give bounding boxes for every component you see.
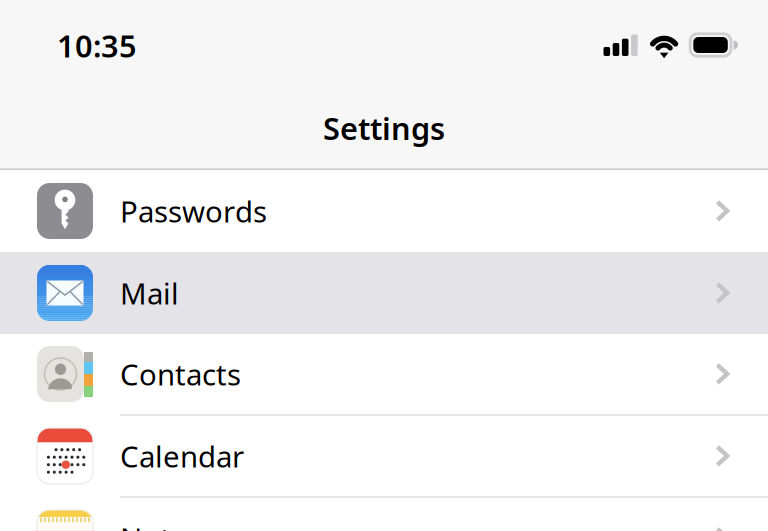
staticText: Settings <box>323 108 445 148</box>
staticText: Contacts <box>120 354 241 393</box>
button[interactable]: Notes <box>0 498 768 531</box>
button[interactable]: Passwords <box>0 170 768 252</box>
staticText: 10:35 <box>57 25 137 66</box>
button[interactable]: Contacts <box>0 334 768 416</box>
button[interactable]: Mail <box>0 252 768 334</box>
staticText: Mail <box>120 273 179 312</box>
staticText: Passwords <box>120 191 267 230</box>
staticText: Calendar <box>120 436 244 475</box>
button[interactable]: Calendar <box>0 416 768 498</box>
staticText: Notes <box>120 518 202 531</box>
